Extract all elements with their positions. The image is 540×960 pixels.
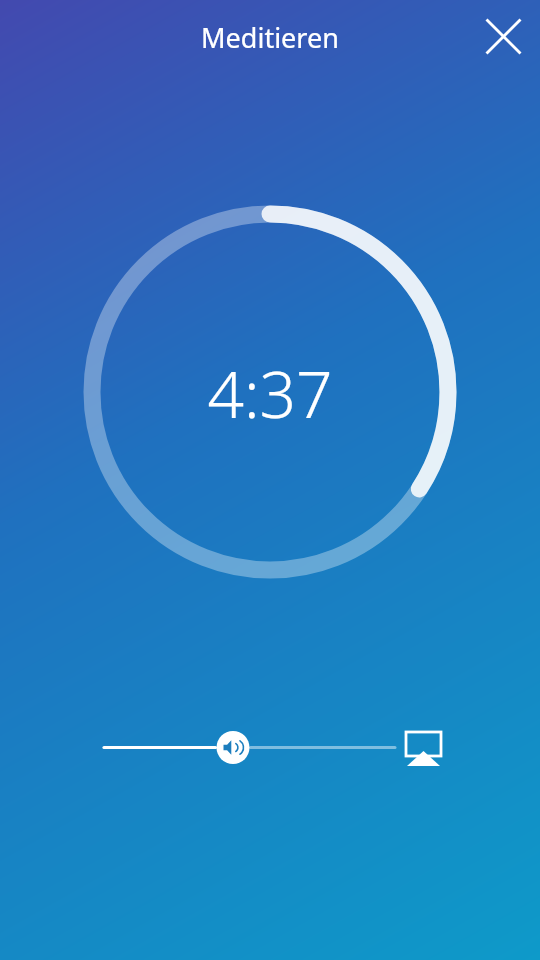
button[interactable]: Close: [471, 4, 537, 70]
button[interactable]: AirPlay: [398, 722, 450, 774]
staticText: 4:37: [207, 350, 333, 437]
button[interactable]: Volume: [96, 722, 403, 774]
button[interactable]: Meditieren: [120, 8, 420, 66]
staticText: Meditieren: [201, 19, 339, 56]
